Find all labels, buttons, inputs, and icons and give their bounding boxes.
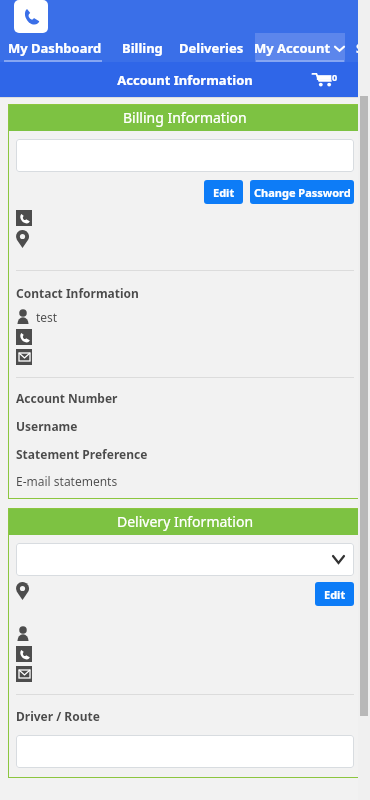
staticText: Billing <box>122 39 163 57</box>
staticText: Account Information <box>117 71 253 89</box>
button[interactable]: Deliveries <box>179 33 244 62</box>
staticText: My Account <box>254 39 331 57</box>
staticText: Username <box>16 418 78 434</box>
button[interactable]: Cart <box>308 67 342 93</box>
staticText: Statement Preference <box>16 446 148 462</box>
button[interactable]: Change Password <box>250 180 354 204</box>
button[interactable]: Home <box>14 0 48 33</box>
staticText: 0 <box>332 71 338 83</box>
staticText: E-mail statements <box>16 473 118 489</box>
button[interactable] <box>16 735 354 768</box>
button[interactable] <box>16 543 354 576</box>
staticText: Deliveries <box>179 39 244 57</box>
button[interactable] <box>16 139 354 172</box>
button[interactable]: My Account <box>254 33 344 62</box>
staticText: Account Number <box>16 390 118 406</box>
staticText: Edit <box>324 587 346 602</box>
staticText: Contact Information <box>16 285 139 301</box>
staticText: Delivery Information <box>117 512 254 531</box>
button[interactable]: Edit <box>204 180 243 204</box>
button[interactable]: Si <box>356 39 368 57</box>
staticText: Si <box>356 39 368 57</box>
staticText: Change Password <box>254 185 351 200</box>
staticText: Billing Information <box>123 108 247 127</box>
button[interactable]: Billing <box>122 33 163 62</box>
staticText: My Dashboard <box>8 39 102 57</box>
staticText: Driver / Route <box>16 708 100 724</box>
staticText: test <box>36 309 58 325</box>
button[interactable]: My Dashboard <box>8 33 102 62</box>
staticText: Edit <box>213 185 235 200</box>
button[interactable]: Edit <box>315 582 354 606</box>
